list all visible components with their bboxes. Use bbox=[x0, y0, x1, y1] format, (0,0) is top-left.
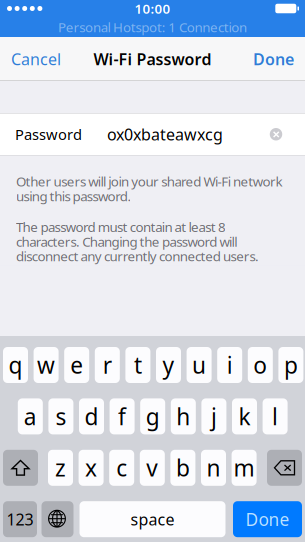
button[interactable]: Cancel bbox=[0, 37, 72, 81]
staticText: e bbox=[70, 350, 83, 380]
staticText: a bbox=[24, 401, 37, 431]
button[interactable]: m bbox=[232, 450, 257, 486]
button[interactable]: t bbox=[125, 347, 150, 383]
staticText: Wi-Fi Password bbox=[93, 48, 211, 70]
button[interactable]: c bbox=[109, 450, 134, 486]
staticText: w bbox=[37, 350, 55, 380]
staticText: y bbox=[162, 350, 174, 380]
button[interactable]: h bbox=[171, 398, 196, 434]
button[interactable]: s bbox=[48, 398, 73, 434]
button[interactable]: 123 bbox=[3, 501, 37, 537]
button[interactable]: z bbox=[48, 450, 73, 486]
button[interactable]: i bbox=[217, 347, 242, 383]
button[interactable]: x bbox=[79, 450, 104, 486]
staticText: 10:00 bbox=[134, 0, 170, 17]
button[interactable]: l bbox=[263, 398, 288, 434]
staticText: m bbox=[234, 453, 255, 483]
button[interactable]: Next keyboard bbox=[41, 501, 73, 537]
button[interactable]: Clear text bbox=[259, 113, 293, 155]
button[interactable]: v bbox=[140, 450, 165, 486]
button[interactable]: Delete bbox=[267, 450, 302, 486]
button[interactable]: j bbox=[201, 398, 226, 434]
button[interactable]: u bbox=[187, 347, 212, 383]
button[interactable]: p bbox=[278, 347, 303, 383]
staticText: Personal Hotspot: 1 Connection bbox=[58, 18, 247, 36]
staticText: q bbox=[8, 350, 22, 380]
staticText: o bbox=[253, 350, 267, 380]
staticText: Password bbox=[15, 124, 82, 144]
staticText: i bbox=[227, 350, 233, 380]
staticText: f bbox=[118, 401, 126, 431]
staticText: d bbox=[84, 401, 98, 431]
staticText: h bbox=[176, 401, 190, 431]
staticText: z bbox=[55, 453, 66, 483]
staticText: Done bbox=[253, 48, 294, 70]
staticText: k bbox=[238, 401, 250, 431]
staticText: v bbox=[146, 453, 158, 483]
staticText: t bbox=[134, 350, 142, 380]
button[interactable]: o bbox=[248, 347, 273, 383]
staticText: u bbox=[192, 350, 206, 380]
button[interactable]: space bbox=[79, 501, 225, 537]
button[interactable]: y bbox=[156, 347, 181, 383]
staticText: g bbox=[146, 401, 160, 431]
button[interactable]: d bbox=[79, 398, 104, 434]
staticText: Cancel bbox=[11, 48, 61, 70]
staticText: Other users will join your shared Wi-Fi … bbox=[16, 172, 283, 205]
staticText: j bbox=[211, 401, 217, 431]
staticText: x bbox=[85, 453, 97, 483]
staticText: 123 bbox=[6, 509, 33, 530]
staticText: c bbox=[116, 453, 127, 483]
button[interactable]: n bbox=[201, 450, 226, 486]
staticText: ox0xbateawxcg bbox=[107, 124, 223, 145]
staticText: Done bbox=[245, 508, 289, 531]
button[interactable]: w bbox=[34, 347, 59, 383]
button[interactable]: Done bbox=[242, 37, 305, 81]
staticText: l bbox=[272, 401, 278, 431]
button[interactable]: q bbox=[3, 347, 28, 383]
button[interactable]: a bbox=[18, 398, 43, 434]
button[interactable]: Shift bbox=[3, 450, 38, 486]
staticText: p bbox=[284, 350, 298, 380]
button[interactable]: f bbox=[110, 398, 135, 434]
staticText: n bbox=[206, 453, 220, 483]
button[interactable]: b bbox=[170, 450, 195, 486]
button[interactable]: g bbox=[140, 398, 165, 434]
button[interactable]: r bbox=[95, 347, 120, 383]
button[interactable]: Done bbox=[233, 501, 302, 537]
button[interactable]: e bbox=[64, 347, 89, 383]
staticText: r bbox=[103, 350, 112, 380]
staticText: The password must contain at least 8 cha… bbox=[16, 218, 259, 265]
button[interactable]: k bbox=[232, 398, 257, 434]
staticText: space bbox=[130, 509, 174, 530]
staticText: b bbox=[176, 453, 190, 483]
staticText: s bbox=[55, 401, 66, 431]
